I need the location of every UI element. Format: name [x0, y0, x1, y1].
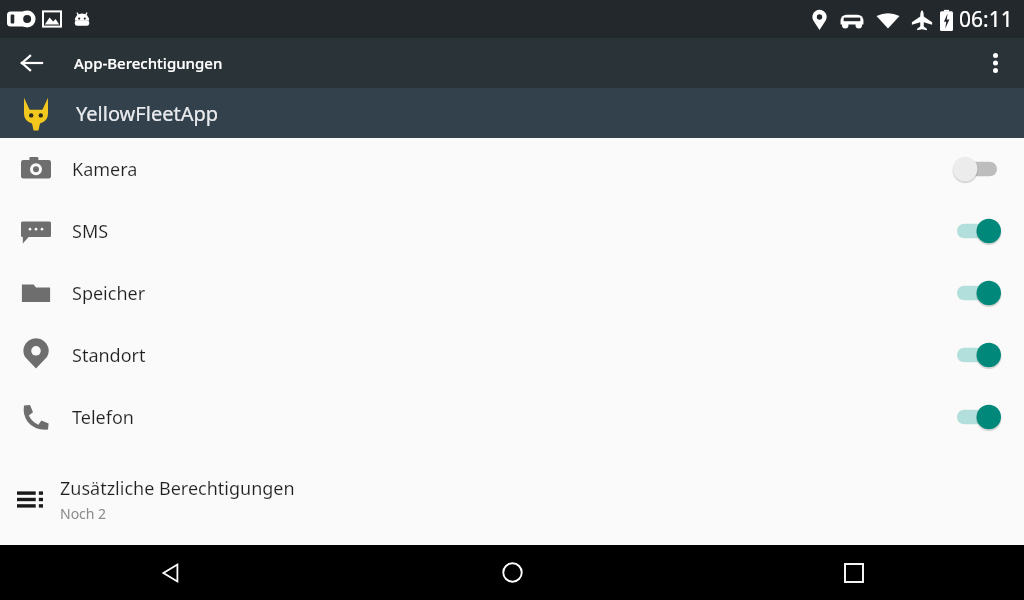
staticText: Speicher: [72, 281, 952, 306]
button[interactable]: Zusätzliche Berechtigungen: [0, 468, 1024, 530]
button[interactable]: Speicher: [0, 262, 1024, 324]
staticText: Kamera: [72, 157, 952, 182]
button[interactable]: Telefon: [0, 386, 1024, 448]
button[interactable]: Home: [342, 545, 683, 600]
staticText: SMS: [72, 219, 952, 244]
button[interactable]: Standort: [0, 324, 1024, 386]
staticText: YellowFleetApp: [76, 100, 219, 127]
staticText: Standort: [72, 343, 952, 368]
button[interactable]: SMS: [0, 200, 1024, 262]
button[interactable]: YellowFleetApp: [0, 88, 1024, 138]
staticText: Zusätzliche Berechtigungen: [60, 476, 295, 501]
staticText: App-Berechtigungen: [74, 53, 223, 73]
button[interactable]: Recent apps: [683, 545, 1024, 600]
button[interactable]: Back: [12, 43, 52, 83]
staticText: Noch 2: [60, 504, 107, 523]
staticText: Telefon: [72, 405, 952, 430]
button[interactable]: Back: [0, 545, 342, 600]
button[interactable]: More options: [974, 42, 1016, 84]
button[interactable]: Kamera: [0, 138, 1024, 200]
staticText: 06:11: [959, 5, 1013, 34]
